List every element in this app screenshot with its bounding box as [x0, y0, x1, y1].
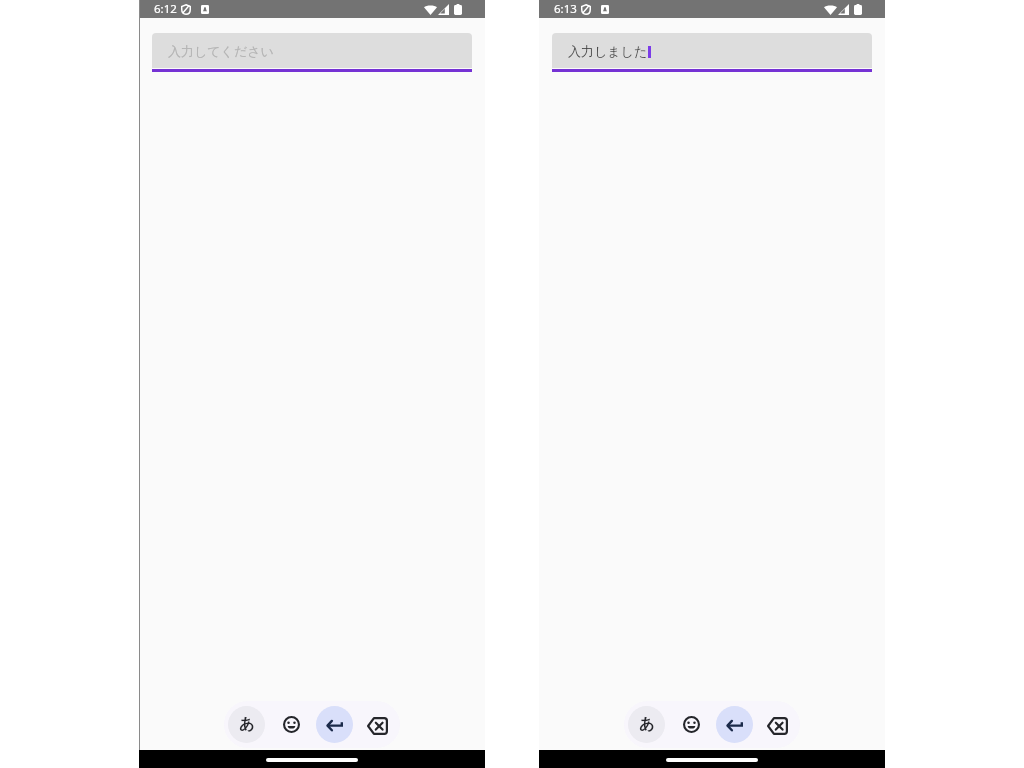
button[interactable]: Backspace — [756, 701, 800, 748]
button[interactable]: Switch input mode — [624, 701, 668, 748]
staticText: 6:13 — [554, 1, 577, 17]
staticText: 入力しました — [568, 43, 648, 59]
button[interactable]: 入力してください — [152, 33, 472, 68]
staticText: 入力してください — [168, 43, 274, 59]
button[interactable]: Emoji — [268, 701, 312, 748]
staticText: あ — [639, 715, 655, 734]
button[interactable]: Switch input mode — [224, 701, 268, 748]
button[interactable]: Home — [666, 758, 758, 762]
staticText: あ — [239, 715, 255, 734]
button[interactable]: Enter — [712, 701, 756, 748]
staticText: 6:12 — [154, 1, 177, 17]
button[interactable]: Home — [266, 758, 358, 762]
button[interactable]: Backspace — [356, 701, 400, 748]
button[interactable]: 入力しました — [552, 33, 872, 68]
button[interactable]: Emoji — [668, 701, 712, 748]
button[interactable]: Enter — [312, 701, 356, 748]
